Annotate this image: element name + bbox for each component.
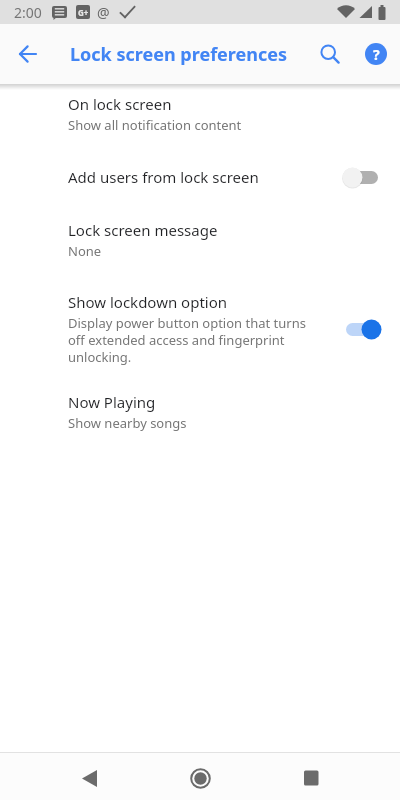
staticText: Lock screen preferences bbox=[70, 42, 288, 67]
staticText: Add users from lock screen bbox=[68, 167, 259, 187]
staticText: None bbox=[68, 242, 102, 260]
button[interactable]: Lock screen message bbox=[0, 204, 400, 276]
staticText: Lock screen message bbox=[68, 220, 218, 240]
button[interactable] bbox=[178, 758, 222, 798]
staticText: Now Playing bbox=[68, 392, 156, 412]
button[interactable] bbox=[0, 24, 56, 84]
staticText: Show nearby songs bbox=[68, 414, 187, 432]
staticText: Show lockdown option bbox=[68, 292, 228, 312]
button[interactable]: Show lockdown option bbox=[0, 276, 400, 376]
button[interactable]: Now Playing bbox=[0, 376, 400, 448]
staticText: ? bbox=[373, 45, 380, 64]
button[interactable]: ? bbox=[352, 24, 400, 84]
staticText: G+ bbox=[78, 7, 89, 18]
button[interactable]: On lock screen bbox=[0, 84, 400, 150]
button[interactable] bbox=[289, 758, 333, 798]
staticText: On lock screen bbox=[68, 94, 172, 114]
button[interactable] bbox=[67, 758, 111, 798]
staticText: 2:00 bbox=[14, 3, 42, 22]
button[interactable]: Add users from lock screen bbox=[0, 150, 400, 204]
staticText: @ bbox=[97, 3, 110, 22]
button[interactable] bbox=[308, 24, 352, 84]
staticText: Display power button option that turns o… bbox=[68, 314, 306, 366]
staticText: Show all notification content bbox=[68, 116, 242, 134]
